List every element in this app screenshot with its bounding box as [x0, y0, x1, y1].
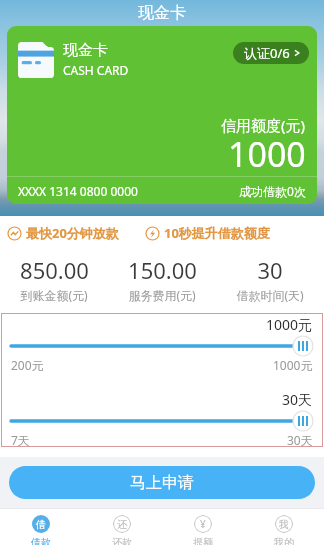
staticText: 还款 [112, 536, 132, 545]
button[interactable]: 还 [81, 508, 162, 545]
button[interactable]: 现金卡 [7, 26, 317, 204]
staticText: 借款时间(天) [236, 287, 304, 303]
staticText: 还 [117, 518, 127, 531]
staticText: 200元 [11, 357, 44, 373]
button[interactable]: 借 [0, 508, 81, 545]
staticText: 现金卡 [63, 41, 108, 60]
staticText: 10秒提升借款额度 [164, 224, 270, 242]
button[interactable]: ¥ [162, 508, 243, 545]
staticText: 成功借款0次 [239, 183, 306, 199]
staticText: 30天 [287, 432, 313, 447]
staticText: XXXX 1314 0800 0000 [18, 183, 138, 199]
staticText: 1000元 [266, 315, 313, 334]
staticText: 30天 [282, 390, 313, 409]
staticText: 借 [36, 518, 46, 531]
staticText: 信用额度(元) [221, 115, 306, 135]
staticText: 1000元 [273, 357, 313, 373]
staticText: 最快20分钟放款 [26, 224, 119, 242]
staticText: 30 [257, 255, 283, 285]
button[interactable]: 认证0/6 [233, 42, 309, 64]
staticText: 到账金额(元) [20, 287, 88, 303]
staticText: 我的 [274, 536, 294, 545]
staticText: CASH CARD [63, 62, 129, 78]
staticText: 马上申请 [130, 473, 194, 493]
staticText: 提额 [193, 536, 213, 545]
staticText: 我 [279, 518, 289, 531]
staticText: 7天 [11, 432, 30, 447]
button[interactable]: 马上申请 [9, 466, 315, 499]
button[interactable]: 我 [243, 508, 324, 545]
staticText: ¥ [200, 517, 206, 531]
staticText: 认证0/6 [244, 44, 290, 62]
staticText: 借款 [31, 536, 51, 545]
staticText: 现金卡 [138, 3, 186, 23]
staticText: 1000 [228, 131, 306, 172]
staticText: 服务费用(元) [128, 287, 196, 303]
staticText: 850.00 [20, 255, 89, 285]
staticText: 150.00 [128, 255, 197, 285]
